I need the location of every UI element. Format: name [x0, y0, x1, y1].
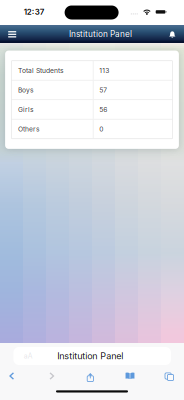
staticText: Institution Panel — [69, 29, 132, 39]
button[interactable]: Notifications — [165, 27, 179, 41]
staticText: 56 — [99, 105, 107, 113]
staticText: Total Students — [18, 66, 64, 74]
button[interactable]: Institution Panel — [13, 347, 171, 365]
staticText: 57 — [99, 86, 107, 94]
button[interactable]: Back — [4, 369, 18, 383]
staticText: Girls — [18, 105, 34, 113]
button[interactable]: Menu — [4, 27, 20, 41]
button[interactable]: Bookmarks — [123, 369, 137, 383]
staticText: aA — [24, 352, 33, 360]
staticText: 12:37 — [24, 7, 45, 17]
staticText: 113 — [99, 66, 109, 74]
button[interactable]: Forward — [45, 369, 59, 383]
button[interactable]: Tabs — [161, 369, 175, 383]
staticText: Others — [18, 125, 40, 133]
staticText: 0 — [99, 125, 103, 133]
staticText: Institution Panel — [57, 350, 123, 361]
staticText: Boys — [18, 86, 34, 94]
button[interactable]: Share — [83, 369, 97, 383]
